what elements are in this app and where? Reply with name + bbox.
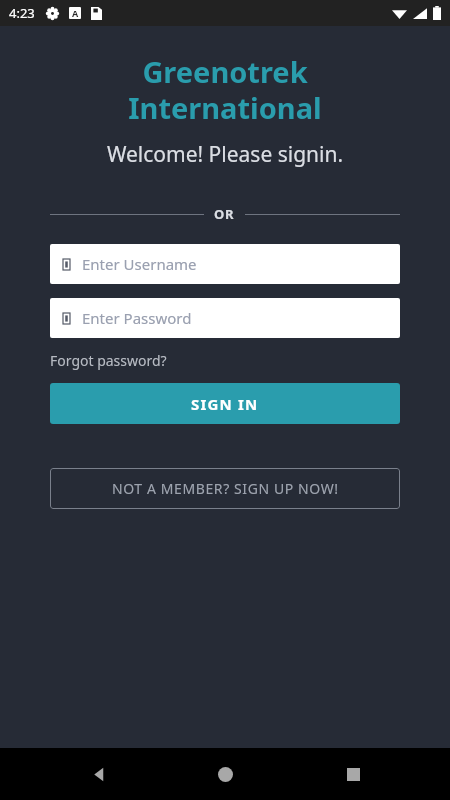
staticText: Enter Password	[82, 308, 192, 328]
button[interactable]: Forgot password?	[50, 349, 167, 372]
staticText: SIGN IN	[191, 394, 259, 414]
staticText: Forgot password?	[50, 351, 167, 370]
staticText: Enter Username	[82, 254, 197, 274]
staticText: NOT A MEMBER? SIGN UP NOW!	[112, 479, 339, 498]
staticText: OR	[214, 205, 235, 223]
staticText: A	[72, 7, 79, 19]
staticText: Greenotrek International	[0, 52, 450, 128]
button[interactable]: Back	[68, 748, 128, 800]
staticText: 4:23	[9, 4, 35, 22]
button[interactable]: NOT A MEMBER? SIGN UP NOW!	[50, 468, 400, 509]
button[interactable]: Recent apps	[323, 748, 383, 800]
button[interactable]: Enter Password	[50, 298, 400, 338]
button[interactable]: Home	[195, 748, 255, 800]
button[interactable]: Enter Username	[50, 244, 400, 284]
button[interactable]: SIGN IN	[50, 383, 400, 424]
staticText: Welcome! Please signin.	[0, 140, 450, 169]
